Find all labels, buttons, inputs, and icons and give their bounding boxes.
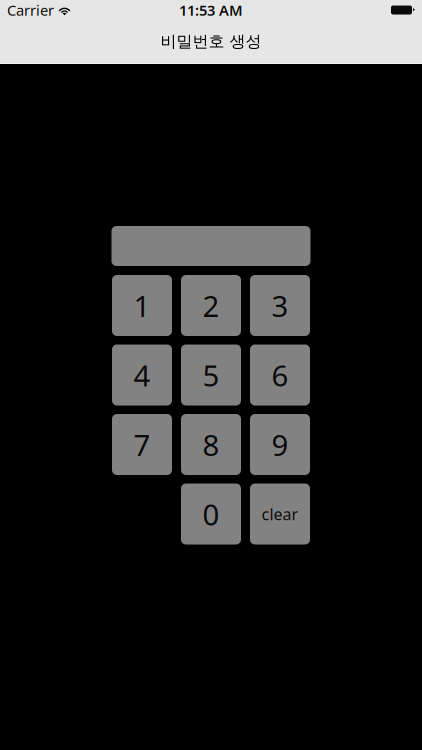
- staticText: 1: [133, 286, 150, 325]
- button[interactable]: 4: [112, 344, 172, 405]
- staticText: clear: [261, 503, 298, 525]
- staticText: 2: [202, 286, 219, 325]
- staticText: 4: [133, 355, 150, 394]
- staticText: 8: [202, 425, 219, 464]
- staticText: Carrier: [7, 0, 54, 20]
- staticText: 11:53 AM: [179, 0, 243, 20]
- staticText: 6: [271, 355, 288, 394]
- button[interactable]: 0: [181, 483, 241, 544]
- staticText: 7: [133, 425, 150, 464]
- button[interactable]: 8: [181, 414, 241, 475]
- button[interactable]: 9: [250, 414, 310, 475]
- staticText: 비밀번호 생성: [160, 32, 261, 51]
- staticText: 9: [271, 425, 288, 464]
- staticText: 0: [202, 494, 219, 533]
- button[interactable]: 3: [250, 275, 310, 336]
- staticText: 5: [202, 355, 219, 394]
- button[interactable]: 1: [112, 275, 172, 336]
- button[interactable]: 2: [181, 275, 241, 336]
- button[interactable]: 6: [250, 344, 310, 405]
- button[interactable]: clear: [250, 483, 310, 544]
- button[interactable]: 5: [181, 344, 241, 405]
- staticText: 3: [271, 286, 288, 325]
- button[interactable]: 7: [112, 414, 172, 475]
